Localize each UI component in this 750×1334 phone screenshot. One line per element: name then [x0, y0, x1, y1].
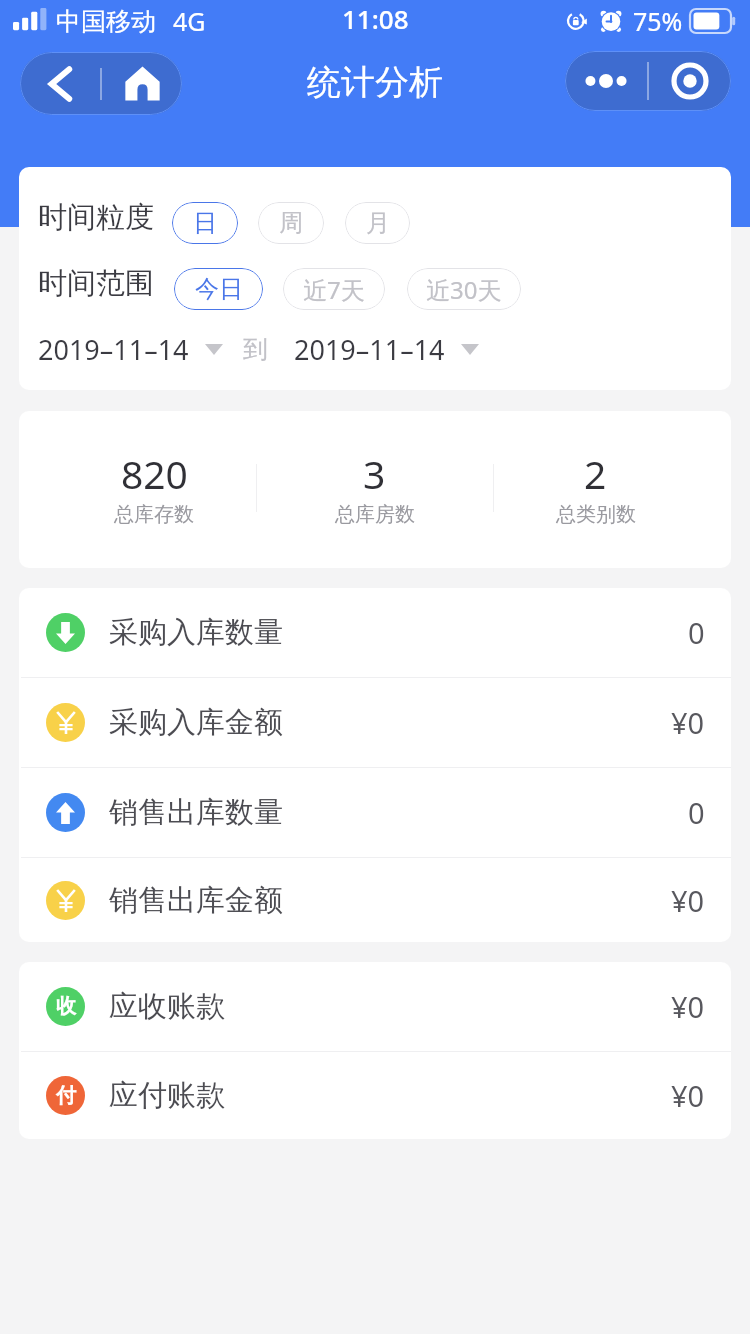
button[interactable]: 2: [485, 447, 706, 527]
staticText: 11:08: [342, 1, 409, 36]
staticText: 应付账款: [109, 1077, 225, 1114]
staticText: 4G: [173, 4, 206, 38]
button[interactable]: 销售出库金额: [19, 858, 731, 942]
staticText: 2019–11–14: [38, 331, 189, 368]
staticText: 3: [363, 447, 386, 500]
staticText: 到: [243, 334, 268, 365]
staticText: 日: [193, 208, 217, 238]
button[interactable]: 今日: [174, 268, 263, 310]
button[interactable]: 销售出库数量: [19, 768, 731, 857]
staticText: 销售出库金额: [109, 882, 283, 919]
button[interactable]: Close: [649, 51, 731, 111]
staticText: 总类别数: [556, 502, 636, 527]
staticText: 0: [688, 613, 705, 652]
staticText: 近30天: [426, 273, 502, 306]
staticText: ¥0: [671, 703, 705, 742]
button[interactable]: 采购入库金额: [19, 678, 731, 767]
staticText: 820: [121, 447, 188, 500]
button[interactable]: 付: [19, 1052, 731, 1139]
button[interactable]: 2019–11–14: [294, 331, 479, 368]
staticText: 销售出库数量: [109, 794, 283, 831]
button[interactable]: 月: [345, 202, 410, 244]
staticText: 采购入库数量: [109, 614, 283, 651]
staticText: 周: [279, 208, 303, 238]
staticText: 采购入库金额: [109, 704, 283, 741]
staticText: 付: [56, 1083, 76, 1108]
button[interactable]: More options: [565, 51, 647, 111]
staticText: 75%: [633, 4, 683, 38]
button[interactable]: 采购入库数量: [19, 588, 731, 677]
staticText: ¥0: [671, 1076, 705, 1115]
staticText: 时间范围: [38, 265, 154, 302]
staticText: 应收账款: [109, 988, 225, 1025]
staticText: 近7天: [303, 273, 365, 306]
staticText: 中国移动: [56, 6, 156, 37]
staticText: 时间粒度: [38, 199, 154, 236]
staticText: 统计分析: [307, 61, 443, 104]
staticText: 今日: [195, 274, 243, 304]
button[interactable]: 820: [44, 447, 264, 527]
button[interactable]: Back: [20, 52, 100, 115]
staticText: 总库存数: [114, 502, 194, 527]
button[interactable]: Home: [102, 52, 182, 115]
button[interactable]: 收: [19, 962, 731, 1051]
staticText: 收: [56, 994, 76, 1019]
button[interactable]: 3: [264, 447, 485, 527]
staticText: 月: [366, 208, 390, 238]
staticText: 0: [688, 793, 705, 832]
staticText: 2: [584, 447, 607, 500]
staticText: ¥0: [671, 987, 705, 1026]
staticText: 总库房数: [335, 502, 415, 527]
button[interactable]: 近30天: [407, 268, 521, 310]
button[interactable]: 日: [172, 202, 238, 244]
button[interactable]: 2019–11–14: [38, 331, 223, 368]
staticText: ¥0: [671, 881, 705, 920]
button[interactable]: 近7天: [283, 268, 385, 310]
staticText: 2019–11–14: [294, 331, 445, 368]
button[interactable]: 周: [258, 202, 324, 244]
